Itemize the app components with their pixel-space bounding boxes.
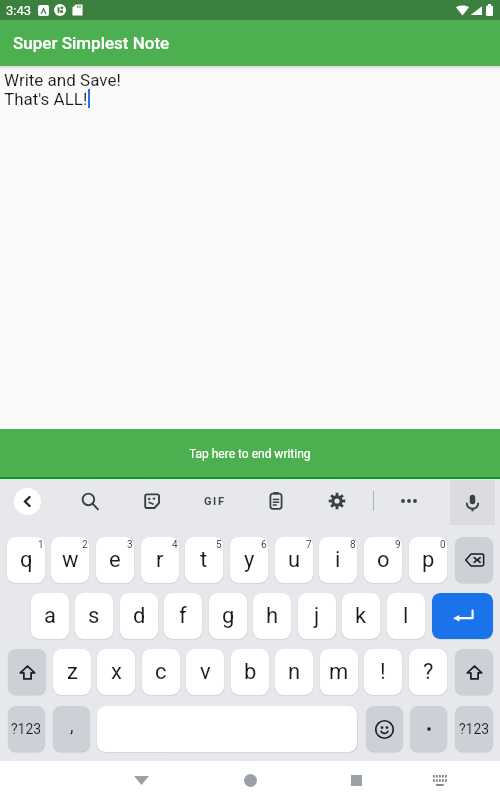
button[interactable]: o <box>364 537 402 583</box>
staticText: r <box>156 547 164 573</box>
staticText: , <box>70 715 74 736</box>
button[interactable]: ?123 <box>8 706 45 752</box>
button[interactable]: ? <box>409 649 447 695</box>
button[interactable]: Clipboard <box>262 487 290 515</box>
button[interactable]: w <box>51 537 89 583</box>
button[interactable]: Comma <box>53 706 90 752</box>
button[interactable]: r <box>141 537 179 583</box>
staticText: 1 <box>38 539 44 551</box>
button[interactable]: x <box>97 649 135 695</box>
staticText: z <box>67 659 78 685</box>
staticText: k <box>355 603 367 629</box>
button[interactable]: q <box>7 537 45 583</box>
button[interactable]: Search <box>76 487 104 515</box>
staticText: y <box>244 547 255 573</box>
button[interactable]: GIF <box>203 489 227 513</box>
button[interactable]: l <box>387 593 425 639</box>
staticText: o <box>377 547 390 573</box>
button[interactable]: z <box>53 649 91 695</box>
staticText: 6 <box>261 539 267 551</box>
button[interactable]: y <box>230 537 268 583</box>
staticText: e <box>109 547 121 573</box>
staticText: 4 <box>172 539 178 551</box>
staticText: u <box>288 547 301 573</box>
staticText: m <box>329 659 349 685</box>
staticText: Tap here to end writing <box>189 447 311 461</box>
staticText: GIF <box>204 495 226 508</box>
staticText: ! <box>380 659 386 685</box>
button[interactable]: Shift <box>8 649 46 695</box>
staticText: p <box>422 547 435 573</box>
staticText: 5 <box>216 539 222 551</box>
button[interactable]: Recent apps <box>336 761 376 800</box>
button[interactable]: Emoji <box>366 706 403 752</box>
button[interactable]: i <box>319 537 357 583</box>
button[interactable]: Back <box>14 488 41 515</box>
staticText: 3:43 <box>6 3 32 18</box>
button[interactable]: c <box>142 649 180 695</box>
button[interactable]: ?123 <box>455 706 493 752</box>
button[interactable]: Home <box>230 761 270 800</box>
staticText: v <box>200 659 211 685</box>
staticText: ? <box>423 659 434 685</box>
staticText: t <box>200 547 208 573</box>
staticText: 0 <box>440 539 446 551</box>
staticText: f <box>179 603 187 629</box>
button[interactable]: n <box>275 649 313 695</box>
staticText: ?123 <box>459 721 490 737</box>
button[interactable]: j <box>298 593 336 639</box>
button[interactable]: Switch keyboard <box>420 761 460 800</box>
button[interactable]: t <box>185 537 223 583</box>
staticText: g <box>222 603 235 629</box>
button[interactable]: Shift <box>455 649 493 695</box>
button[interactable]: u <box>275 537 313 583</box>
staticText: 2 <box>82 539 88 551</box>
staticText: 7 <box>306 539 312 551</box>
button[interactable]: Period <box>410 706 447 752</box>
staticText: w <box>62 547 79 573</box>
staticText: n <box>288 659 301 685</box>
staticText: q <box>20 547 33 573</box>
button[interactable]: Backspace <box>455 537 493 583</box>
button[interactable]: f <box>164 593 202 639</box>
button[interactable]: Voice input <box>450 480 495 525</box>
button[interactable]: e <box>96 537 134 583</box>
staticText: b <box>244 659 257 685</box>
staticText: 8 <box>350 539 356 551</box>
staticText: j <box>314 603 320 629</box>
button[interactable]: Stickers <box>138 487 166 515</box>
staticText: x <box>111 659 122 685</box>
staticText: i <box>335 547 341 573</box>
button[interactable]: b <box>231 649 269 695</box>
button[interactable]: s <box>75 593 113 639</box>
staticText: c <box>155 659 167 685</box>
staticText: a <box>44 603 56 629</box>
button[interactable]: h <box>253 593 291 639</box>
staticText: 3 <box>127 539 133 551</box>
staticText: ?123 <box>11 721 42 737</box>
button[interactable]: d <box>120 593 158 639</box>
staticText: d <box>133 603 146 629</box>
staticText: h <box>266 603 279 629</box>
button[interactable]: k <box>342 593 380 639</box>
staticText: l <box>403 603 409 629</box>
button[interactable]: Enter <box>432 593 493 639</box>
staticText: s <box>88 603 100 629</box>
button[interactable]: ! <box>364 649 402 695</box>
staticText: Super Simplest Note <box>13 33 170 53</box>
button[interactable]: v <box>186 649 224 695</box>
button[interactable]: Back <box>121 761 161 800</box>
button[interactable]: m <box>320 649 358 695</box>
staticText: Write and Save! That's ALL! <box>4 70 121 109</box>
button[interactable]: g <box>209 593 247 639</box>
button[interactable]: a <box>31 593 69 639</box>
button[interactable]: Super Simplest Note <box>0 20 500 66</box>
button[interactable]: Settings <box>323 487 351 515</box>
button[interactable]: p <box>409 537 447 583</box>
button[interactable]: Tap here to end writing <box>0 429 500 479</box>
staticText: 9 <box>395 539 401 551</box>
button[interactable]: More options <box>395 487 423 515</box>
